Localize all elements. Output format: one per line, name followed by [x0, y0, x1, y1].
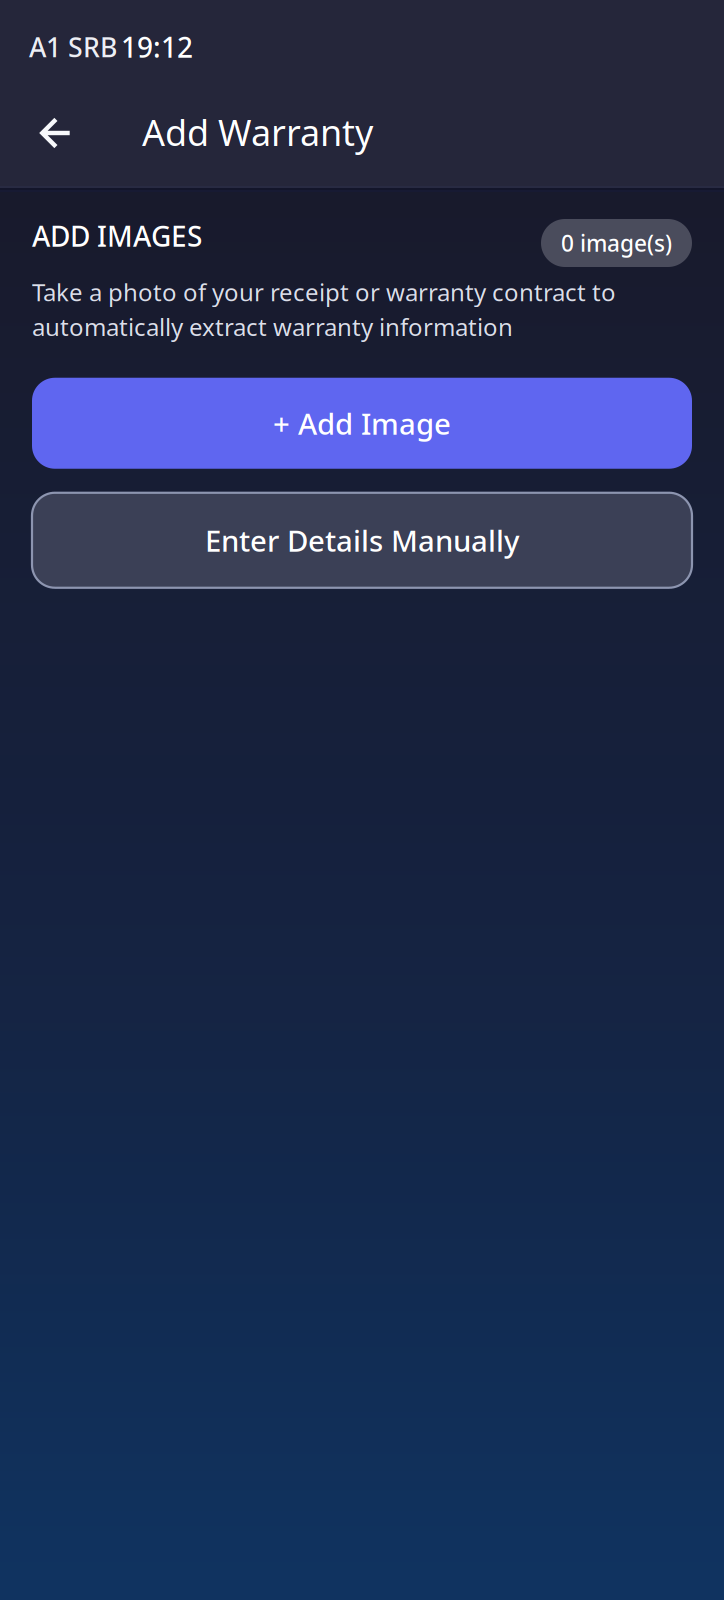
- staticText: + Add Image: [273, 404, 451, 443]
- staticText: 19:12: [121, 28, 193, 66]
- staticText: ADD IMAGES: [32, 217, 202, 255]
- staticText: A1 SRB: [29, 29, 117, 65]
- staticText: Add Warranty: [142, 108, 373, 156]
- staticText: 0 image(s): [561, 228, 672, 258]
- button[interactable]: Back: [20, 98, 92, 178]
- button[interactable]: Enter Details Manually: [32, 493, 692, 588]
- staticText: Enter Details Manually: [205, 521, 519, 560]
- staticText: Take a photo of your receipt or warranty…: [32, 276, 616, 308]
- button[interactable]: + Add Image: [32, 378, 692, 469]
- staticText: automatically extract warranty informati…: [32, 311, 513, 343]
